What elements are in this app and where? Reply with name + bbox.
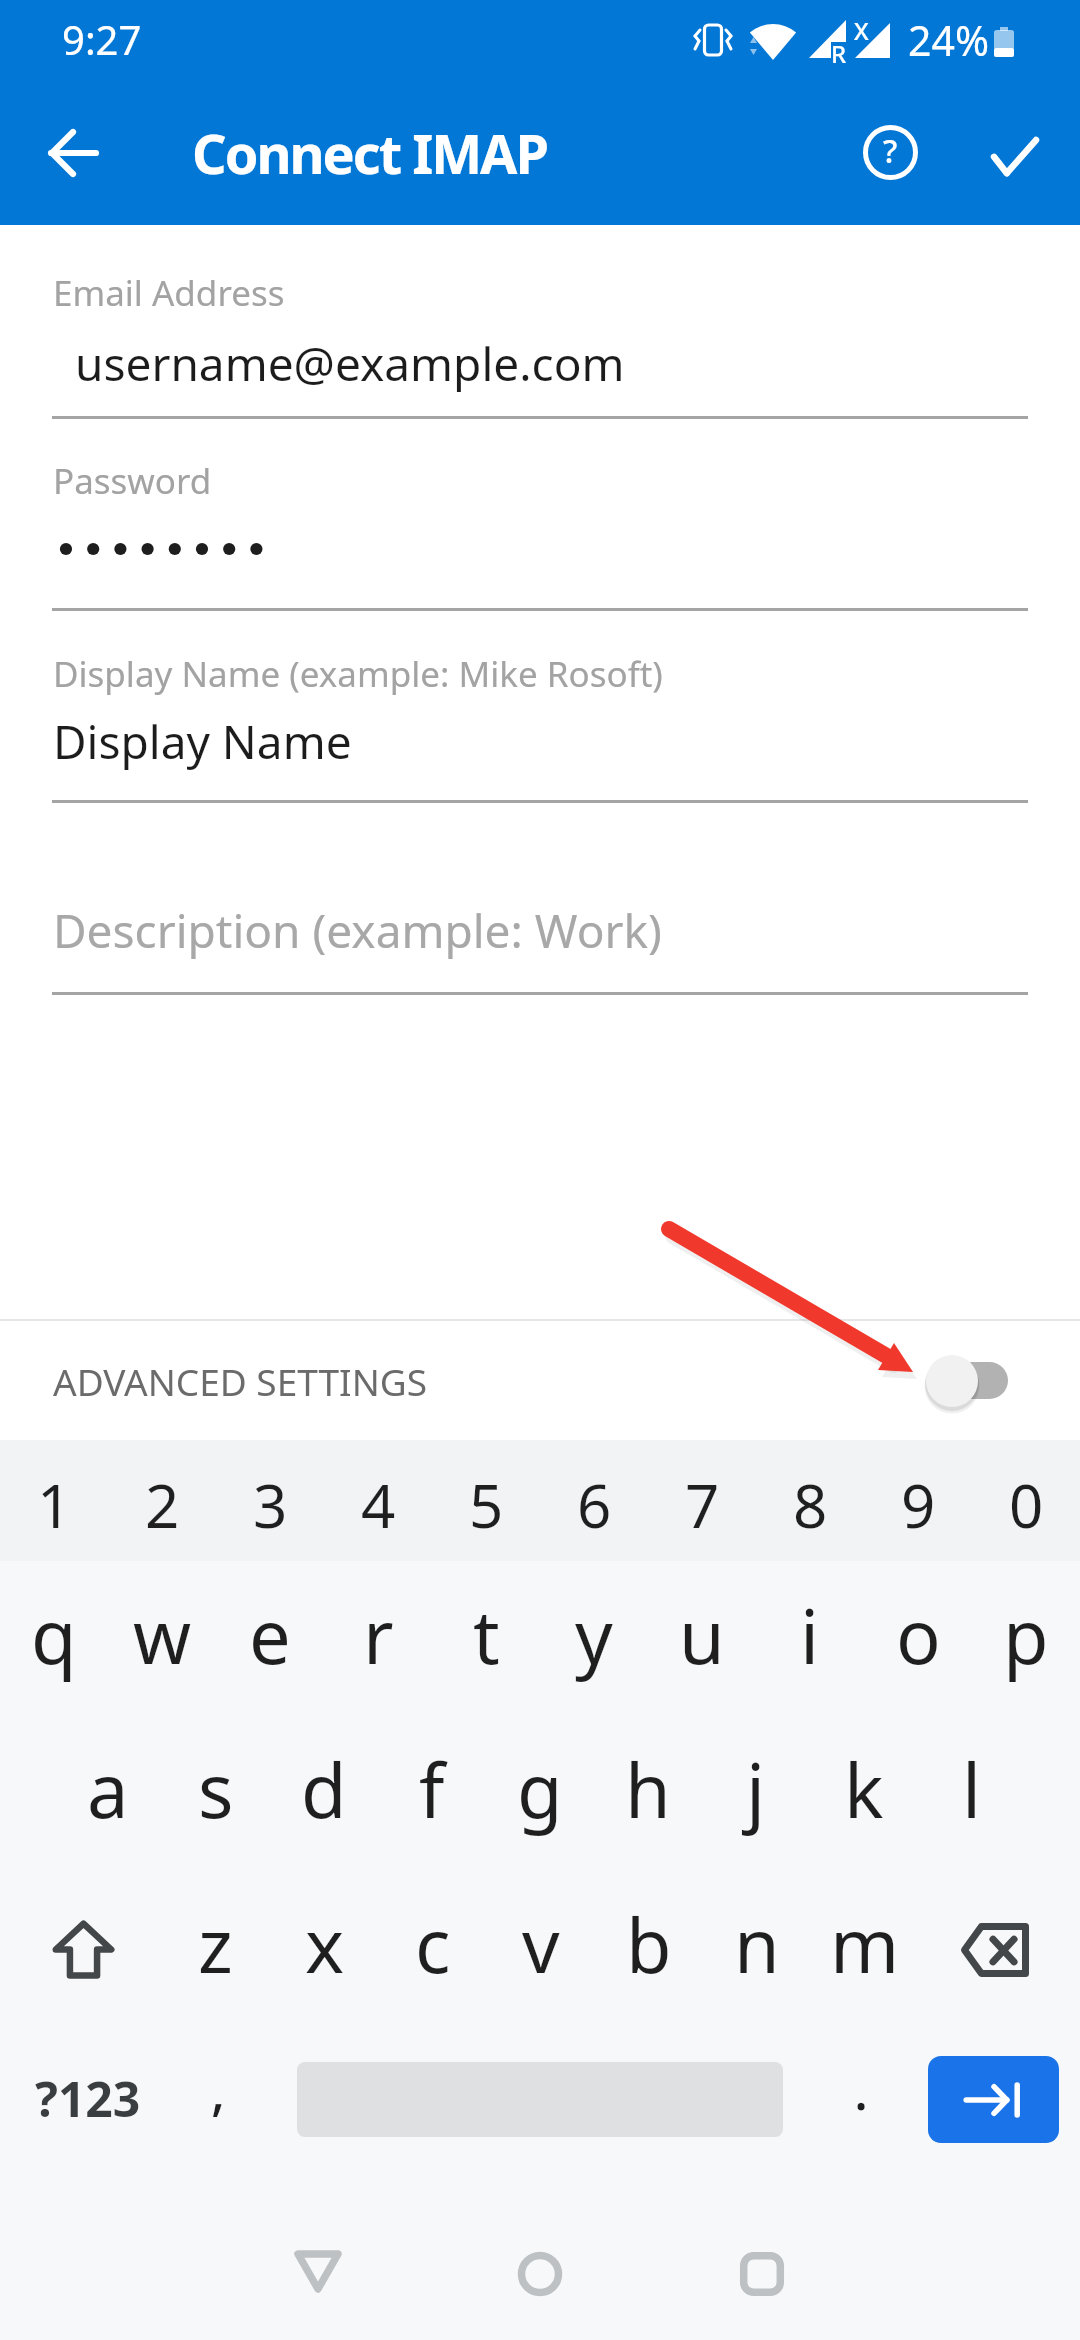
staticText: ?123 [35, 2066, 141, 2131]
button[interactable]: 4 [324, 1440, 432, 1561]
button[interactable]: o [864, 1561, 972, 1715]
button[interactable]: v [487, 1869, 595, 2023]
staticText: 6 [577, 1464, 612, 1546]
staticText: Display Name [53, 710, 352, 773]
staticText: 7 [685, 1464, 720, 1546]
staticText: l [962, 1739, 982, 1840]
staticText: Description (example: Work) [53, 899, 662, 962]
button[interactable]: Help [842, 104, 938, 200]
staticText: z [198, 1894, 233, 1995]
button[interactable]: t [432, 1561, 540, 1715]
staticText: e [249, 1585, 291, 1686]
button[interactable]: i [756, 1561, 864, 1715]
button[interactable]: g [486, 1715, 594, 1869]
button[interactable]: Home [480, 2214, 600, 2334]
staticText: h [625, 1739, 671, 1840]
staticText: Email Address [53, 269, 285, 317]
staticText: Display Name (example: Mike Rosoft) [53, 650, 663, 698]
button[interactable]: 5 [432, 1440, 540, 1561]
button[interactable]: q [0, 1561, 108, 1715]
button[interactable]: p [972, 1561, 1080, 1715]
button[interactable]: ?123 [0, 2023, 178, 2184]
button[interactable]: z [161, 1869, 270, 2023]
button[interactable]: f [378, 1715, 486, 1869]
button[interactable]: 6 [540, 1440, 648, 1561]
button[interactable]: Back [258, 2210, 378, 2330]
staticText: d [301, 1739, 347, 1840]
button[interactable]: 1 [0, 1440, 108, 1561]
button[interactable]: k [810, 1715, 918, 1869]
button[interactable]: w [108, 1561, 216, 1715]
button[interactable]: c [379, 1869, 487, 2023]
staticText: i [800, 1585, 820, 1686]
staticText: n [734, 1894, 780, 1995]
button[interactable]: Backspace [919, 1869, 1080, 2023]
button[interactable]: u [648, 1561, 756, 1715]
staticText: Password [53, 457, 212, 505]
staticText: Connect IMAP [192, 116, 548, 190]
staticText: 9:27 [62, 12, 142, 66]
button[interactable]: x [270, 1869, 379, 2023]
staticText: o [896, 1585, 941, 1686]
button[interactable]: h [594, 1715, 702, 1869]
button[interactable]: n [703, 1869, 811, 2023]
staticText: 3 [253, 1464, 288, 1546]
staticText: 0 [1009, 1464, 1044, 1546]
button[interactable]: r [324, 1561, 432, 1715]
staticText: m [830, 1894, 900, 1995]
button[interactable]: ADVANCED SETTINGS [0, 1321, 1080, 1440]
staticText: u [679, 1585, 725, 1686]
button[interactable]: 3 [216, 1440, 324, 1561]
button[interactable]: y [540, 1561, 648, 1715]
button[interactable]: 0 [972, 1440, 1080, 1561]
staticText: v [522, 1894, 560, 1995]
button[interactable]: . [800, 2023, 920, 2184]
button[interactable]: 2 [108, 1440, 216, 1561]
staticText: f [419, 1739, 445, 1840]
button[interactable]: Next [920, 2023, 1080, 2184]
staticText: k [844, 1739, 884, 1840]
staticText: 2 [145, 1464, 180, 1546]
button[interactable]: s [162, 1715, 270, 1869]
button[interactable]: , [178, 2023, 278, 2184]
button[interactable]: l [918, 1715, 1026, 1869]
staticText: p [1003, 1585, 1049, 1686]
staticText: R [831, 37, 847, 70]
staticText: ? [883, 129, 898, 173]
staticText: y [575, 1585, 613, 1686]
button[interactable]: b [595, 1869, 703, 2023]
staticText: 24% [908, 12, 989, 68]
staticText: t [473, 1585, 500, 1686]
button[interactable]: Navigate up [25, 105, 121, 201]
staticText: r [363, 1585, 394, 1686]
staticText: b [626, 1894, 672, 1995]
staticText: q [31, 1585, 77, 1686]
staticText: a [87, 1739, 129, 1840]
button[interactable]: j [702, 1715, 810, 1869]
button[interactable]: e [216, 1561, 324, 1715]
staticText: s [198, 1739, 234, 1840]
staticText: username@example.com [75, 332, 625, 395]
button[interactable]: d [270, 1715, 378, 1869]
button[interactable]: a [54, 1715, 162, 1869]
staticText: w [133, 1585, 192, 1686]
staticText: 9 [901, 1464, 936, 1546]
button[interactable]: 7 [648, 1440, 756, 1561]
staticText: X [854, 14, 869, 47]
staticText: . [854, 2054, 869, 2125]
staticText: j [746, 1739, 766, 1840]
button[interactable]: 8 [756, 1440, 864, 1561]
button[interactable]: Recent apps [702, 2214, 822, 2334]
staticText: c [415, 1894, 451, 1995]
button[interactable]: 9 [864, 1440, 972, 1561]
staticText: x [305, 1894, 345, 1995]
staticText: 4 [361, 1464, 396, 1546]
button[interactable]: Done [967, 105, 1063, 201]
staticText: 5 [469, 1464, 504, 1546]
staticText: g [517, 1739, 563, 1840]
staticText: 8 [793, 1464, 828, 1546]
button[interactable]: m [811, 1869, 919, 2023]
button[interactable] [278, 2023, 800, 2184]
staticText: , [211, 2054, 226, 2125]
button[interactable]: Shift [0, 1869, 161, 2023]
